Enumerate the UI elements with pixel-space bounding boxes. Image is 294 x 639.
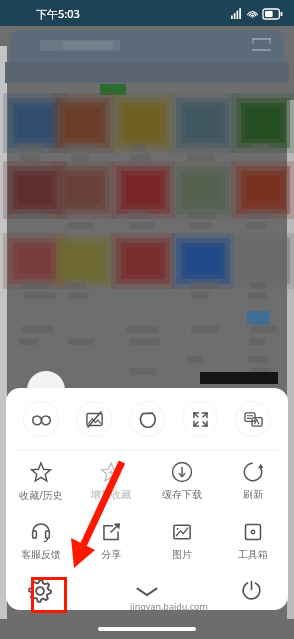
button[interactable]: 刷新 (217, 451, 288, 511)
button[interactable]: 图片 (146, 511, 217, 571)
staticText: 图片 (172, 548, 192, 561)
staticText: 下午5:03 (36, 6, 80, 21)
button[interactable]: 退出 (241, 580, 262, 601)
button[interactable]: 夜间模式 (129, 401, 165, 437)
button[interactable]: 收起菜单 (130, 574, 164, 608)
button[interactable]: 增加收藏 (76, 451, 146, 511)
button[interactable]: 无图模式 (76, 401, 112, 437)
staticText: 分享 (101, 548, 121, 561)
button[interactable]: 分享 (76, 511, 146, 571)
button[interactable]: 收藏/历史 (6, 451, 76, 511)
button[interactable]: 客服反馈 (6, 511, 76, 571)
staticText: 缓存下载 (162, 488, 202, 501)
staticText: 刷新 (243, 488, 263, 501)
button[interactable]: 翻译 (235, 401, 271, 437)
staticText: 收藏/历史 (19, 488, 63, 502)
staticText: 工具箱 (238, 548, 268, 561)
button[interactable]: 工具箱 (217, 511, 288, 571)
button[interactable]: 缓存下载 (146, 451, 217, 511)
staticText: jingyan.baidu.com (130, 600, 208, 610)
staticText: 增加收藏 (91, 488, 131, 501)
staticText: 客服反馈 (21, 548, 61, 561)
button[interactable]: 设置 (27, 578, 53, 604)
button[interactable]: 护眼模式 (23, 401, 59, 437)
button[interactable]: 全屏 (182, 401, 218, 437)
